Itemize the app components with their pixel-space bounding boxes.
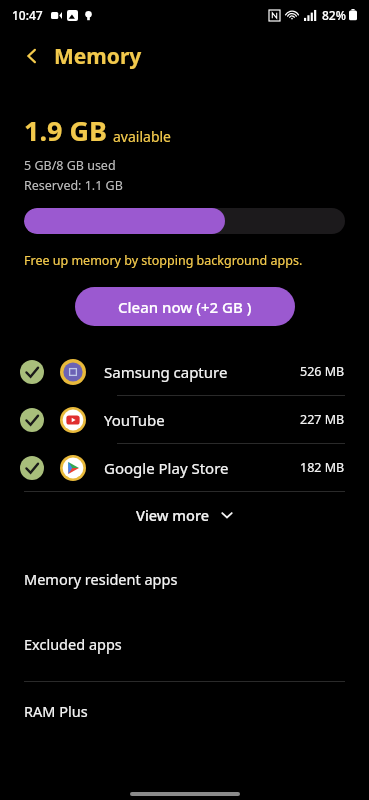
staticText: Clean now (+2 GB ) [118, 297, 252, 317]
staticText: Free up memory by stopping background ap… [24, 252, 303, 269]
button[interactable]: Memory resident apps [0, 566, 369, 592]
staticText: YouTube [104, 410, 165, 430]
button[interactable]: Excluded apps [0, 631, 369, 657]
staticText: 227 MB [300, 411, 345, 428]
button[interactable]: YouTube [0, 396, 369, 443]
staticText: Reserved: 1.1 GB [24, 177, 123, 194]
button[interactable]: Back [16, 40, 48, 72]
staticText: Samsung capture [104, 362, 228, 382]
staticText: 82% [322, 7, 346, 23]
staticText: Excluded apps [24, 634, 122, 654]
button[interactable]: Google Play Store [0, 444, 369, 491]
staticText: Memory resident apps [24, 569, 178, 589]
staticText: 5 GB/8 GB used [24, 157, 116, 174]
button[interactable]: Clean now (+2 GB ) [75, 287, 295, 326]
staticText: available [113, 127, 172, 146]
staticText: View more [136, 505, 210, 525]
staticText: Memory [54, 42, 142, 71]
button[interactable]: RAM Plus [0, 698, 369, 724]
staticText: 182 MB [300, 459, 345, 476]
staticText: 1.9 GB [24, 112, 107, 149]
staticText: 526 MB [300, 363, 345, 380]
staticText: Google Play Store [104, 458, 229, 478]
button[interactable]: View more [0, 492, 369, 538]
button[interactable]: Samsung capture [0, 348, 369, 395]
staticText: RAM Plus [24, 701, 88, 721]
staticText: 10:47 [12, 7, 43, 23]
